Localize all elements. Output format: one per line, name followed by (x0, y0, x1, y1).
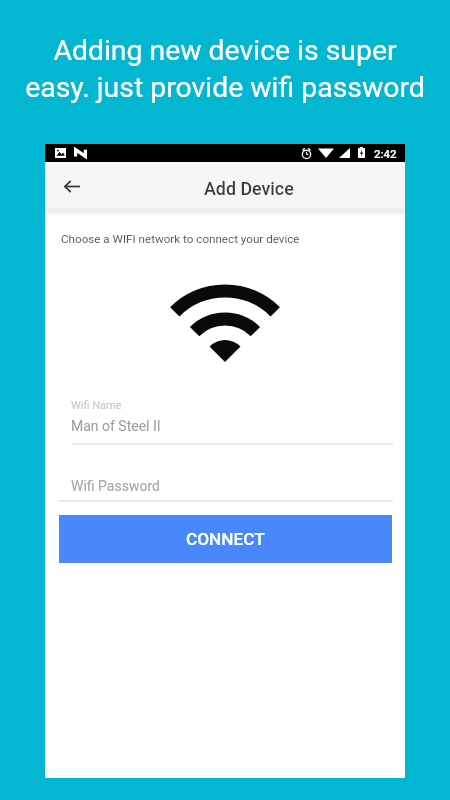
staticText: 2:42 (374, 147, 397, 160)
staticText: Man of Steel II (71, 418, 161, 434)
staticText: CONNECT (186, 529, 265, 549)
staticText: Wifi Password (71, 478, 160, 494)
staticText: Choose a WIFI network to connect your de… (61, 232, 300, 246)
button[interactable]: Back (52, 166, 92, 206)
button[interactable]: CONNECT (59, 515, 392, 563)
staticText: Adding new device is super easy. just pr… (25, 34, 425, 104)
staticText: Add Device (204, 178, 294, 199)
staticText: Wifi Name (71, 399, 122, 412)
